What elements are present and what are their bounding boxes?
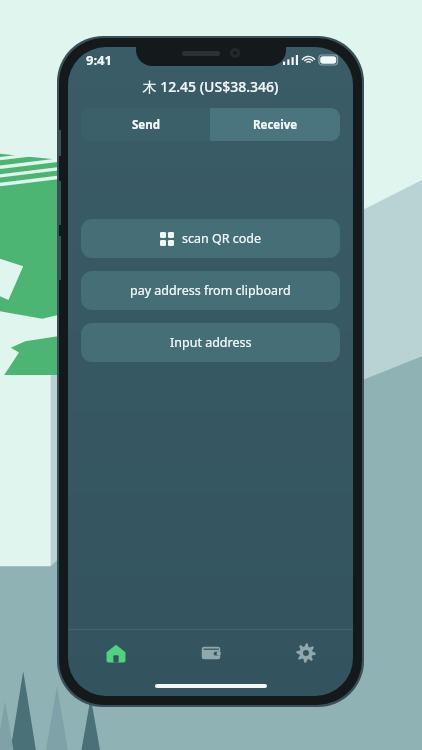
button[interactable]: pay address from clipboard: [81, 271, 340, 310]
staticText: 木 12.45 (US$38.346): [68, 77, 353, 96]
staticText: scan QR code: [182, 230, 262, 247]
button[interactable]: Wallet: [163, 630, 258, 676]
staticText: Input address: [170, 334, 252, 351]
staticText: 9:41: [86, 51, 112, 69]
button[interactable]: scan QR code: [81, 219, 340, 258]
staticText: Receive: [253, 117, 298, 133]
button[interactable]: Receive: [210, 108, 340, 141]
staticText: pay address from clipboard: [130, 282, 291, 299]
button[interactable]: Settings: [258, 630, 353, 676]
staticText: Send: [132, 117, 160, 133]
button[interactable]: Send: [81, 108, 210, 141]
button[interactable]: Input address: [81, 323, 340, 362]
button[interactable]: Home: [68, 630, 163, 676]
